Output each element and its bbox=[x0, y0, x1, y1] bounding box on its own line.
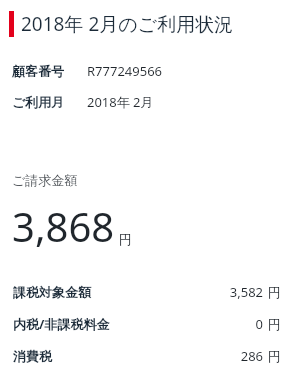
staticText: 円 bbox=[268, 316, 281, 332]
staticText: 286 bbox=[203, 347, 263, 365]
staticText: R777249566 bbox=[87, 62, 163, 80]
button[interactable]: ご利用月 bbox=[0, 93, 293, 111]
staticText: 2018年 2月のご利用状況 bbox=[21, 11, 234, 37]
staticText: 0 bbox=[203, 315, 263, 333]
staticText: 課税対象金額 bbox=[13, 284, 91, 300]
staticText: 円 bbox=[268, 284, 281, 300]
staticText: 円 bbox=[268, 348, 281, 364]
button[interactable]: 内税/非課税料金 bbox=[0, 315, 293, 333]
staticText: 2018年 2月 bbox=[87, 93, 154, 111]
button[interactable]: 顧客番号 bbox=[0, 62, 293, 80]
staticText: 円 bbox=[119, 231, 132, 247]
staticText: ご利用月 bbox=[12, 94, 65, 110]
staticText: 3,868 bbox=[12, 199, 115, 253]
staticText: 内税/非課税料金 bbox=[13, 315, 110, 333]
button[interactable]: 課税対象金額 bbox=[0, 283, 293, 301]
button[interactable]: 消費税 bbox=[0, 347, 293, 365]
staticText: 消費税 bbox=[13, 348, 52, 364]
staticText: 3,582 bbox=[203, 283, 263, 301]
staticText: 顧客番号 bbox=[12, 63, 64, 79]
staticText: ご請求金額 bbox=[12, 172, 78, 188]
